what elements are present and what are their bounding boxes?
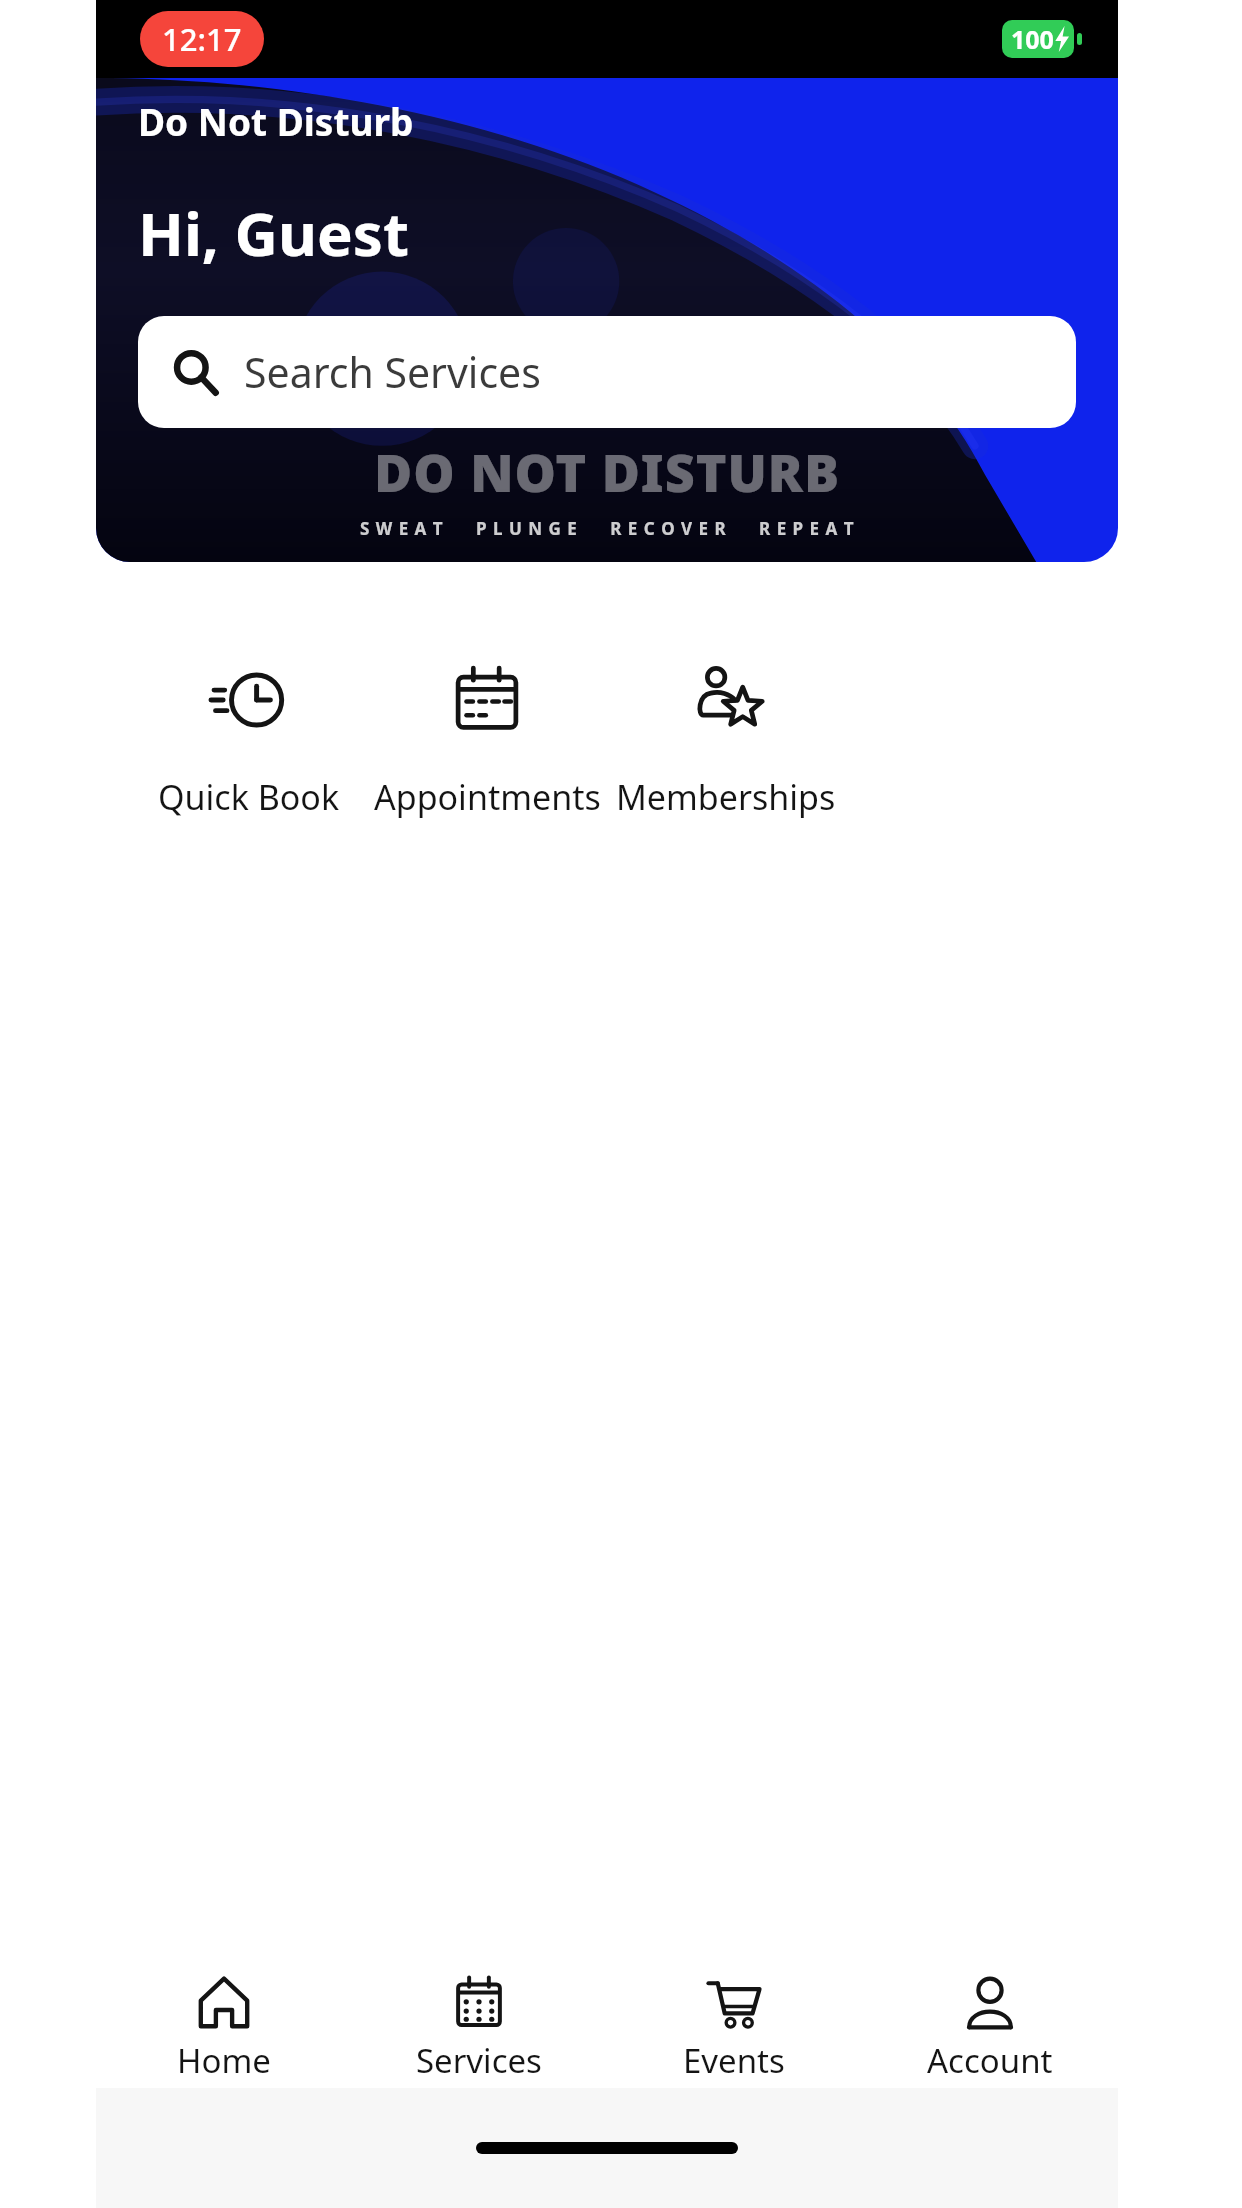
staticText: Appointments [374,774,601,820]
staticText: Services [416,2038,542,2083]
staticText: DO NOT DISTURB [374,436,841,507]
staticText: Hi, Guest [138,192,409,274]
staticText: Search Services [244,344,541,400]
button[interactable]: Home [96,1968,351,2088]
staticText: Do Not Disturb [138,96,414,146]
button[interactable]: Services [351,1968,606,2088]
button[interactable]: Account [862,1968,1118,2088]
staticText: Home [177,2038,271,2083]
button[interactable]: Memberships [606,654,845,828]
staticText: Account [927,2038,1053,2083]
button[interactable]: Quick Book [130,654,368,828]
staticText: 100 [1011,22,1054,56]
button[interactable]: Search Services [138,316,1076,428]
button[interactable]: Appointments [368,654,606,828]
staticText: 12:17 [162,18,242,60]
button[interactable]: Events [606,1968,862,2088]
staticText: Events [683,2038,785,2083]
staticText: Quick Book [158,774,340,820]
staticText: Memberships [616,774,836,820]
staticText: S W E A T P L U N G E R E C O V E R R E … [360,517,855,540]
